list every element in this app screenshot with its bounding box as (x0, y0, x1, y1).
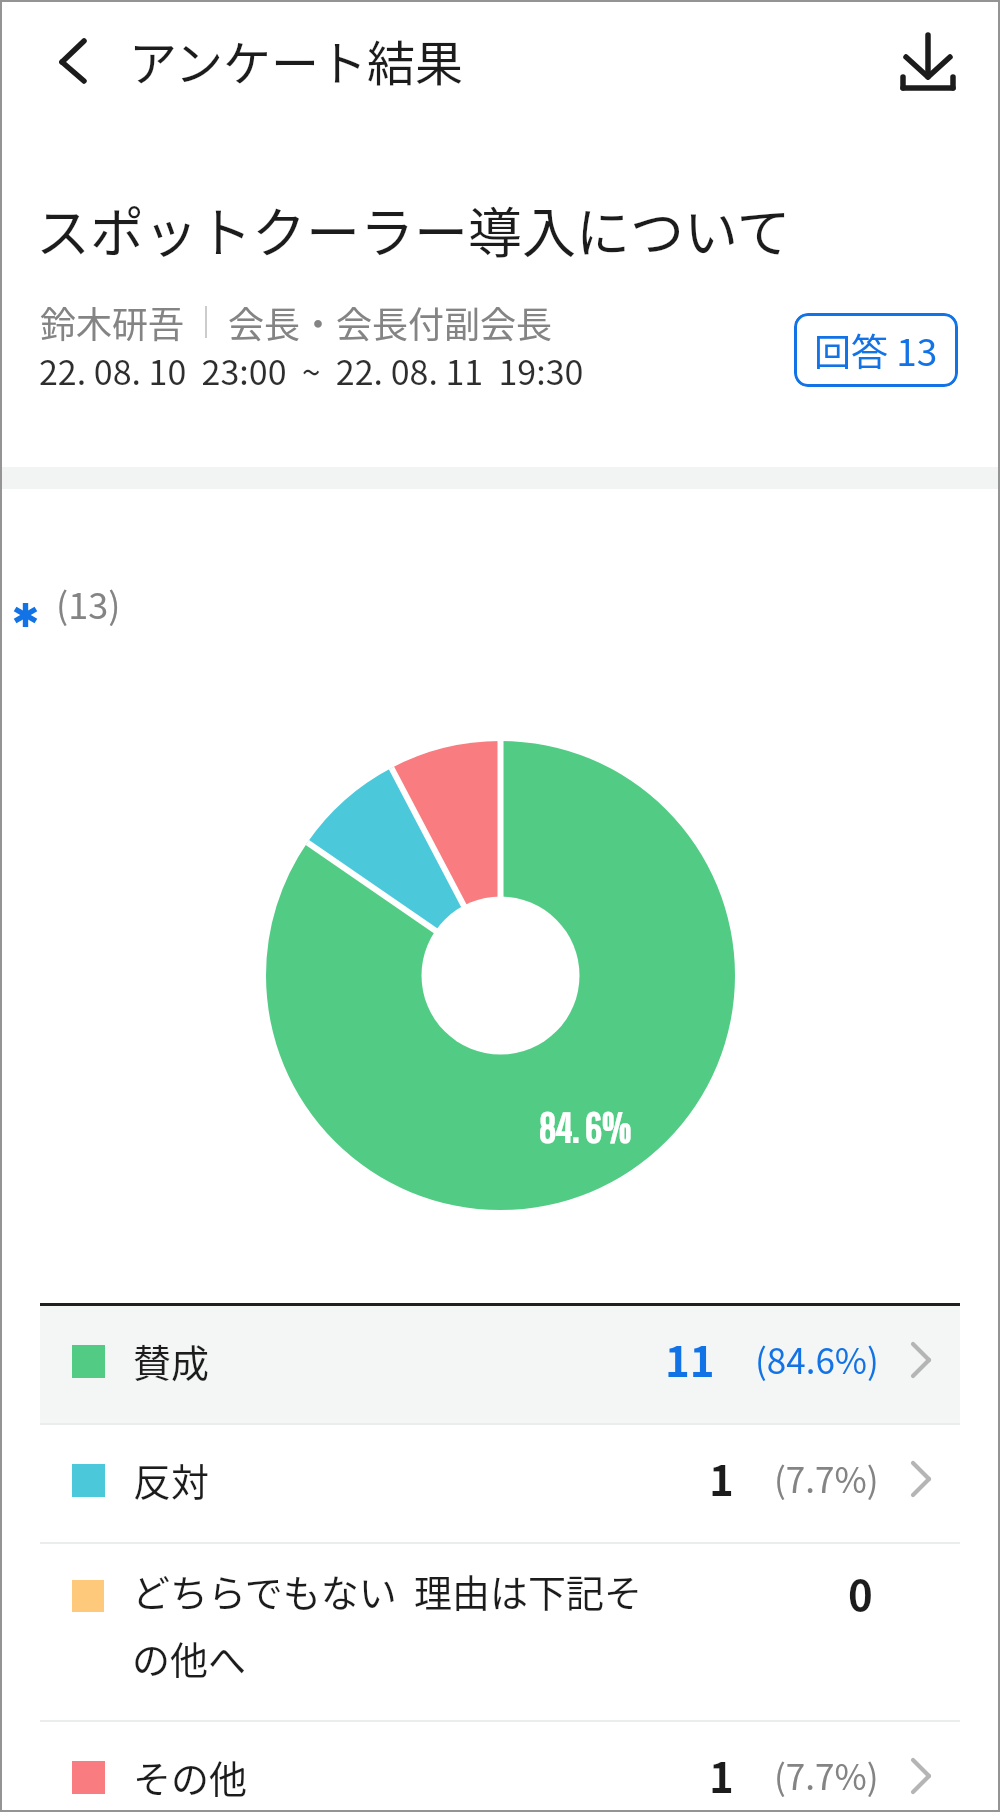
staticText: 1 (709, 1744, 734, 1805)
staticText: 回答 13 (814, 323, 938, 377)
staticText: 賛成 (133, 1333, 665, 1388)
staticText: (84.6%) (755, 1333, 879, 1384)
button[interactable]: 反対 (40, 1425, 960, 1542)
staticText: 反対 (133, 1452, 709, 1507)
staticText: (13) (56, 577, 121, 629)
staticText: 84. 6% (538, 1103, 631, 1151)
staticText: 22. 08. 10 23:00 ~ 22. 08. 11 19:30 (39, 346, 584, 395)
staticText: 会長・会長付副会長 (228, 296, 553, 348)
staticText: スポットクーラー導入について (36, 190, 791, 268)
button[interactable]: Download (896, 26, 960, 98)
staticText: 鈴木研吾 (40, 296, 185, 348)
button[interactable]: その他 (40, 1722, 960, 1812)
button[interactable]: どちらでもない 理由は下記そ の他へ (40, 1544, 960, 1720)
staticText: 11 (665, 1328, 715, 1389)
button[interactable]: Back (36, 22, 100, 102)
staticText: (7.7%) (774, 1749, 879, 1800)
staticText: (7.7%) (774, 1452, 879, 1503)
staticText: アンケート結果 (129, 25, 464, 95)
staticText: どちらでもない 理由は下記そ の他へ (132, 1563, 848, 1685)
staticText: その他 (133, 1749, 709, 1804)
button[interactable]: 賛成 (40, 1306, 960, 1423)
button[interactable]: 回答 13 (794, 313, 958, 387)
staticText: 0 (848, 1562, 873, 1623)
staticText: 1 (709, 1447, 734, 1508)
